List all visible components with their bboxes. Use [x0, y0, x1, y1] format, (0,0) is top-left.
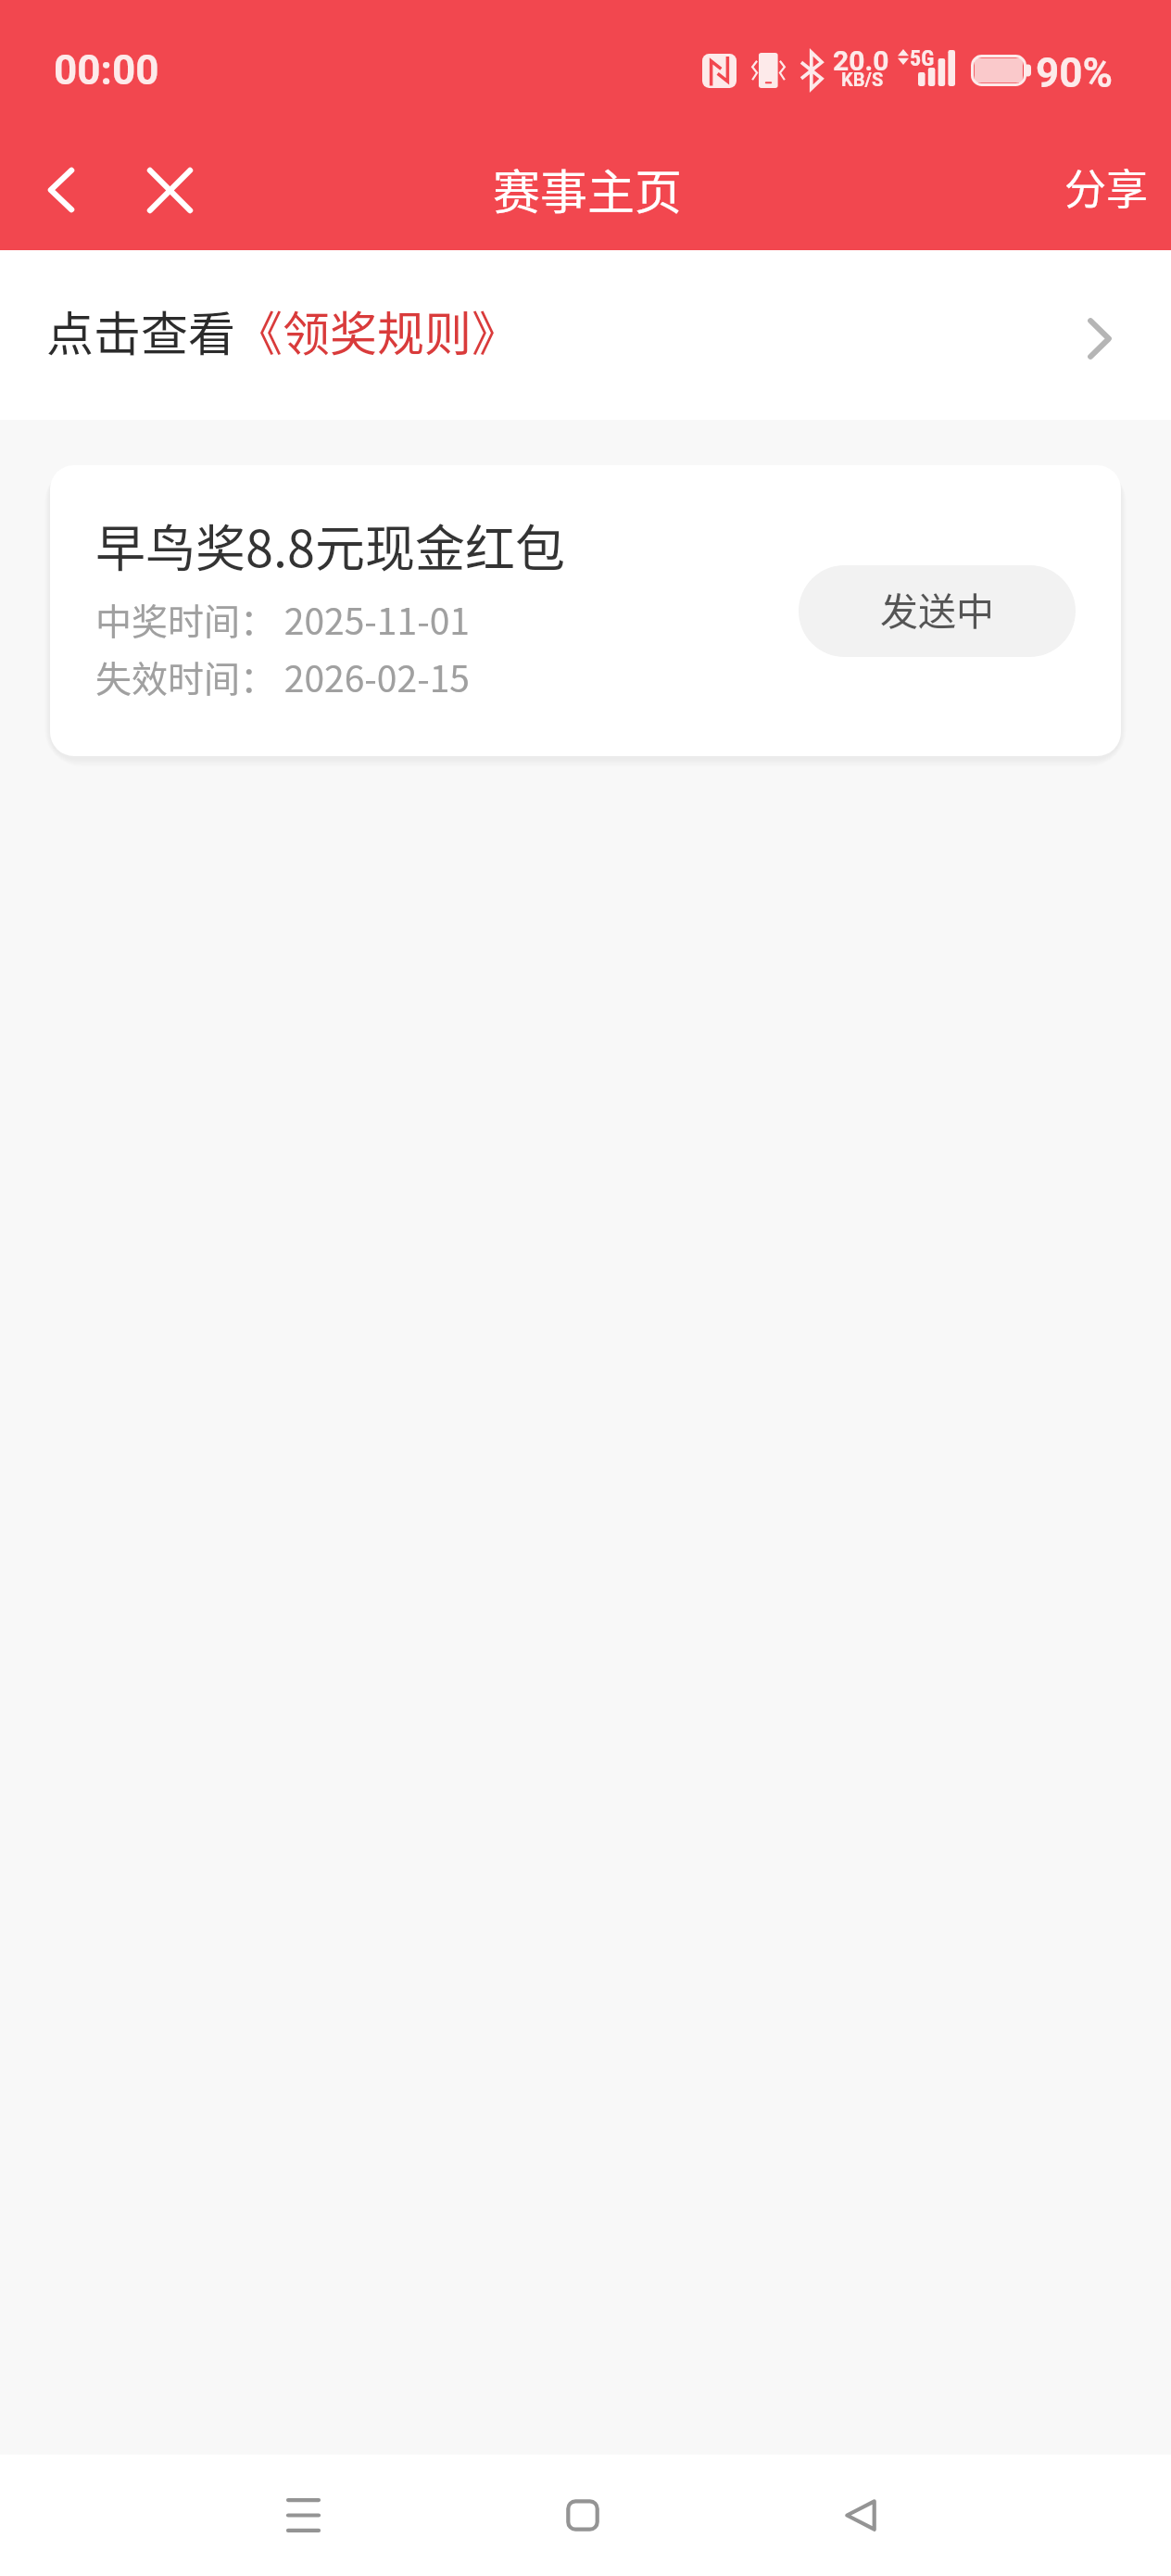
- button[interactable]: Home: [490, 2455, 675, 2576]
- button[interactable]: 早鸟奖8.8元现金红包: [50, 465, 1121, 756]
- staticText: 00:00: [54, 46, 159, 95]
- staticText: 分享: [1064, 157, 1149, 217]
- staticText: 赛事主页: [493, 155, 683, 223]
- button[interactable]: Recent apps: [210, 2455, 396, 2576]
- button[interactable]: Back: [0, 125, 122, 255]
- button[interactable]: 分享: [1033, 120, 1171, 250]
- staticText: 中奖时间： 2025-11-01: [95, 593, 470, 645]
- staticText: 5G: [910, 45, 935, 71]
- button[interactable]: 点击查看《领奖规则》: [0, 250, 1171, 420]
- staticText: 发送中: [880, 581, 994, 636]
- staticText: 90%: [1036, 49, 1114, 97]
- staticText: 点击查看《领奖规则》: [46, 297, 520, 365]
- button[interactable]: Close: [122, 125, 217, 255]
- staticText: 20.0: [833, 44, 889, 77]
- button[interactable]: 发送中: [799, 565, 1076, 657]
- staticText: KB/S: [841, 69, 884, 90]
- staticText: 早鸟奖8.8元现金红包: [95, 509, 565, 581]
- staticText: 失效时间： 2026-02-15: [95, 650, 470, 702]
- button[interactable]: Back: [768, 2455, 953, 2576]
